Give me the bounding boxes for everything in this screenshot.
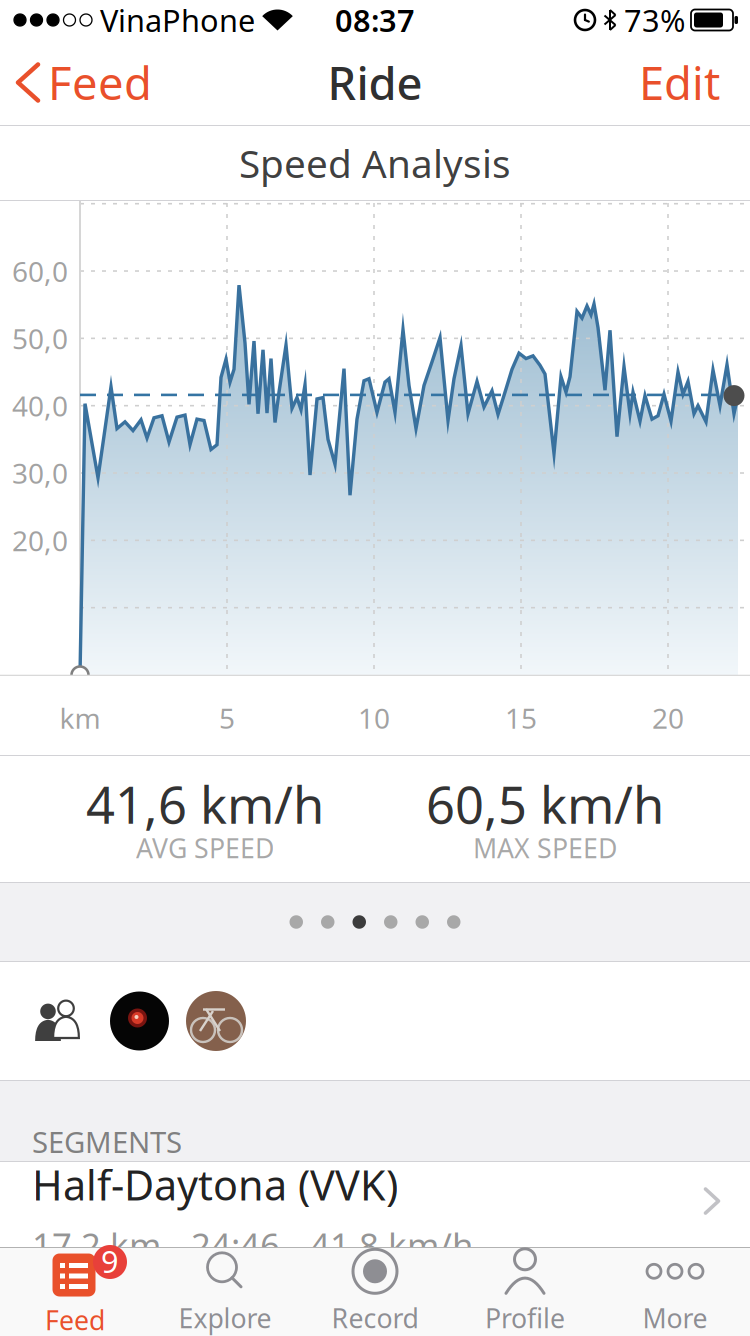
staticText: 24:46 <box>191 1222 280 1268</box>
staticText: km <box>59 699 100 737</box>
staticText: 17,2 km <box>32 1222 161 1268</box>
staticText: 60,5 km/h <box>426 770 664 838</box>
button[interactable]: 9 <box>0 1248 150 1336</box>
staticText: Feed <box>45 1302 105 1336</box>
staticText: MAX SPEED <box>473 830 617 866</box>
staticText: Ride <box>327 52 422 113</box>
staticText: 41,6 km/h <box>86 770 324 838</box>
button[interactable]: Explore <box>150 1248 300 1336</box>
staticText: Speed Analysis <box>239 137 511 189</box>
staticText: Explore <box>178 1300 271 1336</box>
button[interactable]: More <box>600 1248 750 1336</box>
staticText: 60,0 <box>12 252 68 290</box>
staticText: Record <box>331 1300 418 1336</box>
staticText: 5 <box>219 699 235 737</box>
staticText: Half-Daytona (VVK) <box>32 1157 398 1212</box>
button[interactable] <box>0 998 82 1044</box>
staticText: 73% <box>624 0 685 40</box>
staticText: 08:37 <box>335 0 415 40</box>
staticText: 50,0 <box>12 320 68 357</box>
staticText: Profile <box>485 1300 565 1336</box>
staticText: 41,8 km/h <box>310 1222 473 1268</box>
staticText: 30,0 <box>12 454 68 492</box>
button[interactable] <box>169 991 246 1051</box>
button[interactable]: Half-Daytona (VVK) <box>0 1141 750 1268</box>
button[interactable]: Profile <box>450 1248 600 1336</box>
staticText: VinaPhone <box>100 0 255 40</box>
staticText: 10 <box>358 699 390 737</box>
staticText: 15 <box>505 699 537 737</box>
staticText: AVG SPEED <box>136 830 274 866</box>
button[interactable]: Record <box>300 1248 450 1336</box>
staticText: Edit <box>639 52 720 113</box>
button[interactable]: Edit <box>639 52 750 113</box>
staticText: 20,0 <box>12 522 68 559</box>
button[interactable] <box>82 991 169 1050</box>
staticText: 9 <box>101 1241 119 1281</box>
staticText: 40,0 <box>12 387 68 424</box>
staticText: Feed <box>48 52 152 113</box>
button[interactable]: Feed <box>0 52 152 113</box>
staticText: 20 <box>652 699 684 737</box>
staticText: More <box>642 1300 707 1336</box>
staticText: SEGMENTS <box>32 1122 182 1161</box>
